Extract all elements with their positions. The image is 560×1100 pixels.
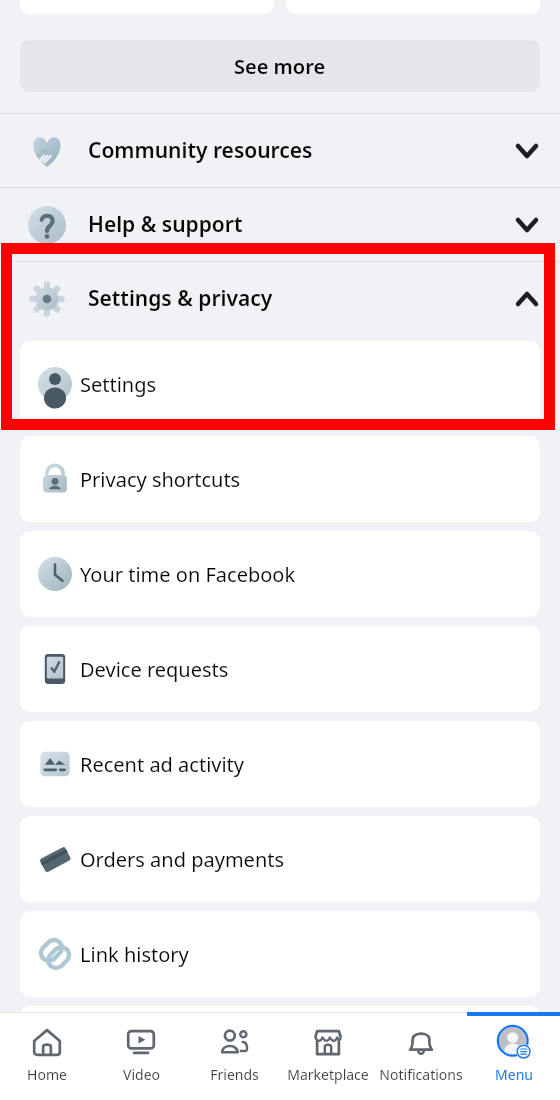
button[interactable]: Your time on Facebook	[20, 531, 540, 617]
staticText: Help & support	[88, 210, 243, 239]
staticText: Recent ad activity	[80, 751, 245, 778]
button[interactable]: See more	[20, 40, 540, 92]
button[interactable]: Video	[94, 1012, 188, 1100]
button[interactable]: Home	[0, 1012, 94, 1100]
staticText: Link history	[80, 941, 189, 968]
staticText: Marketplace	[287, 1065, 369, 1084]
staticText: Device requests	[80, 656, 229, 683]
other: Menu	[498, 1026, 530, 1058]
button[interactable]: Notifications	[374, 1012, 467, 1100]
button[interactable]: Help & support	[0, 188, 560, 261]
staticText: Home	[27, 1065, 67, 1084]
button[interactable]: Privacy shortcuts	[20, 436, 540, 522]
staticText: Friends	[210, 1065, 259, 1084]
button[interactable]: Link history	[20, 911, 540, 997]
staticText: Video	[123, 1065, 160, 1084]
button[interactable]: Friends	[188, 1012, 281, 1100]
button[interactable]: Menu	[467, 1012, 560, 1100]
button[interactable]: Settings	[20, 341, 540, 427]
button[interactable]: Marketplace	[281, 1012, 374, 1100]
staticText: Notifications	[379, 1065, 463, 1084]
button[interactable]: Settings & privacy	[0, 262, 560, 335]
button[interactable]: Device requests	[20, 626, 540, 712]
staticText: Community resources	[88, 136, 313, 165]
staticText: Privacy shortcuts	[80, 466, 241, 493]
staticText: Settings	[80, 371, 157, 398]
button[interactable]: Orders and payments	[20, 816, 540, 902]
staticText: Orders and payments	[80, 846, 285, 873]
button[interactable]: Community resources	[0, 114, 560, 187]
staticText: Settings & privacy	[88, 284, 273, 313]
staticText: Your time on Facebook	[80, 561, 296, 588]
staticText: See more	[234, 53, 326, 80]
button[interactable]: Recent ad activity	[20, 721, 540, 807]
staticText: Menu	[495, 1065, 533, 1084]
